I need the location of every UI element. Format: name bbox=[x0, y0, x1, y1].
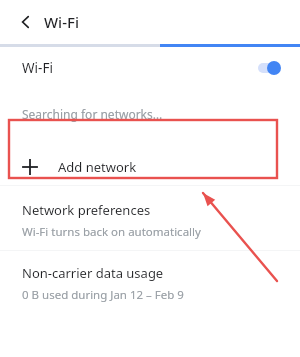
staticText: Add network bbox=[58, 158, 137, 176]
button[interactable]: Wi-Fi bbox=[0, 47, 300, 89]
button[interactable]: Add network bbox=[0, 149, 300, 185]
staticText: Wi-Fi turns back on automatically bbox=[22, 224, 201, 240]
button[interactable]: Network preferences bbox=[0, 186, 300, 250]
staticText: Network preferences bbox=[22, 201, 151, 219]
staticText: Wi-Fi bbox=[22, 59, 53, 77]
staticText: Wi-Fi bbox=[44, 12, 79, 32]
button[interactable]: Wi-Fi on bbox=[258, 59, 284, 77]
staticText: Non-carrier data usage bbox=[22, 264, 164, 282]
button[interactable]: Non-carrier data usage bbox=[0, 251, 300, 313]
staticText: Searching for networks… bbox=[22, 106, 163, 122]
button[interactable]: Back bbox=[14, 10, 38, 34]
staticText: 0 B used during Jan 12 – Feb 9 bbox=[22, 287, 184, 303]
